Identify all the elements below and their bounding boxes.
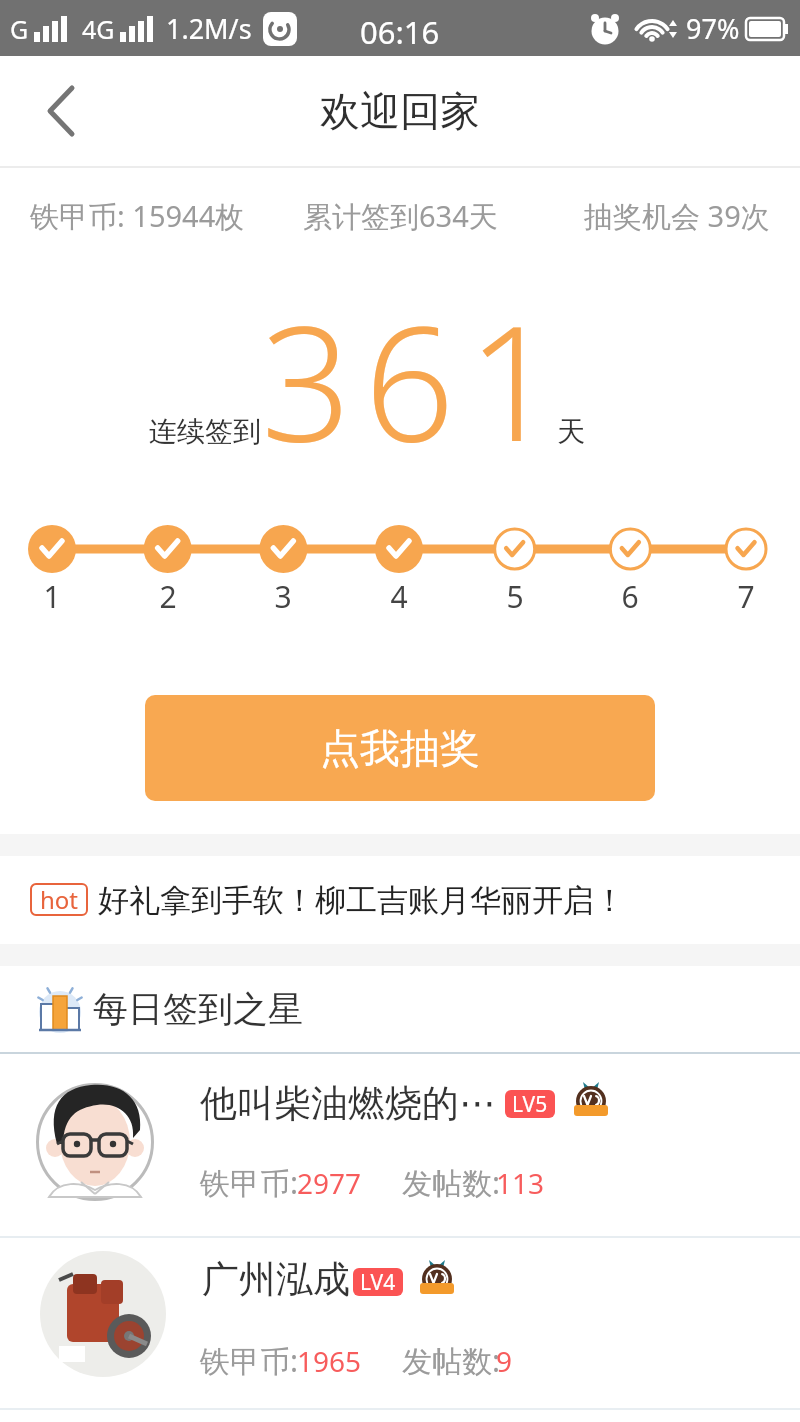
staticText: 每日签到之星 bbox=[93, 987, 303, 1031]
staticText: 累计签到634天 bbox=[303, 196, 498, 236]
staticText: 广州泓成 bbox=[202, 1256, 350, 1303]
staticText: 铁甲币: bbox=[200, 1162, 299, 1203]
button[interactable]: hot bbox=[0, 856, 800, 944]
staticText: 铁甲币: bbox=[200, 1340, 299, 1381]
staticText: 361 bbox=[261, 272, 571, 487]
button[interactable]: 点我抽奖 bbox=[145, 695, 655, 801]
staticText: 6 bbox=[610, 576, 650, 617]
staticText: LV4 bbox=[360, 1268, 396, 1296]
staticText: 他叫柴油燃烧的⋯ bbox=[200, 1080, 496, 1127]
button[interactable] bbox=[0, 56, 110, 166]
button[interactable]: 他叫柴油燃烧的⋯ bbox=[0, 1054, 800, 1236]
staticText: 1.2M/s bbox=[166, 10, 252, 47]
staticText: 7 bbox=[726, 576, 766, 617]
staticText: 铁甲币: 15944枚 bbox=[30, 196, 245, 236]
staticText: 4 bbox=[379, 576, 419, 617]
staticText: 2 bbox=[148, 576, 188, 617]
staticText: 抽奖机会 39次 bbox=[584, 196, 770, 236]
staticText: 3 bbox=[263, 576, 303, 617]
staticText: 发帖数: bbox=[402, 1340, 501, 1381]
staticText: 欢迎回家 bbox=[320, 86, 480, 136]
staticText: 9 bbox=[496, 1342, 513, 1380]
staticText: G bbox=[10, 12, 29, 46]
staticText: 好礼拿到手软！柳工吉账月华丽开启！ bbox=[98, 881, 625, 920]
staticText: 天 bbox=[557, 414, 585, 449]
staticText: 1 bbox=[32, 576, 72, 617]
staticText: 97% bbox=[686, 10, 740, 47]
staticText: hot bbox=[40, 883, 79, 916]
staticText: 连续签到 bbox=[149, 414, 261, 449]
staticText: 4G bbox=[82, 12, 115, 46]
staticText: 113 bbox=[496, 1164, 545, 1202]
staticText: 06:16 bbox=[360, 11, 440, 53]
staticText: 5 bbox=[495, 576, 535, 617]
staticText: 点我抽奖 bbox=[320, 723, 480, 773]
staticText: 1965 bbox=[297, 1342, 362, 1380]
button[interactable]: 广州泓成 bbox=[0, 1238, 800, 1408]
staticText: 2977 bbox=[297, 1164, 362, 1202]
staticText: LV5 bbox=[512, 1090, 548, 1118]
staticText: 发帖数: bbox=[402, 1162, 501, 1203]
